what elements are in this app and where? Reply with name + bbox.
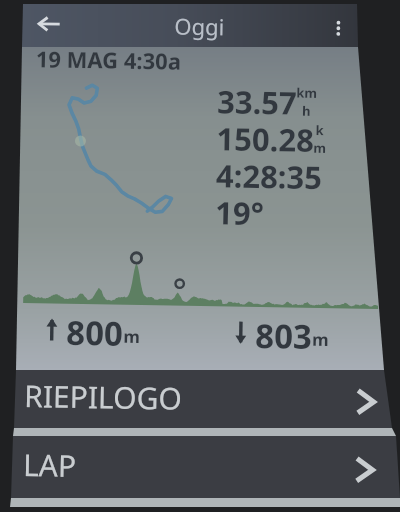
staticText: km bbox=[296, 84, 317, 102]
staticText: 19 MAG 4:30a bbox=[36, 43, 182, 76]
button[interactable]: RIEPILOGO bbox=[11, 366, 396, 431]
button[interactable]: More options bbox=[321, 11, 356, 46]
staticText: m bbox=[312, 328, 329, 351]
staticText: RIEPILOGO bbox=[24, 375, 183, 419]
staticText: m bbox=[313, 139, 326, 157]
staticText: 803 bbox=[255, 313, 313, 354]
staticText: 800 bbox=[66, 310, 124, 351]
staticText: 19° bbox=[215, 191, 265, 229]
staticText: 33.57 bbox=[217, 80, 297, 119]
staticText: m bbox=[123, 325, 140, 348]
staticText: 4:28:35 bbox=[216, 154, 323, 193]
button[interactable]: Back bbox=[31, 6, 66, 41]
staticText: 150.28 bbox=[216, 117, 315, 156]
staticText: Oggi bbox=[174, 10, 225, 41]
staticText: LAP bbox=[23, 444, 77, 486]
staticText: k bbox=[315, 121, 325, 139]
button[interactable]: LAP bbox=[10, 433, 395, 501]
staticText: h bbox=[302, 102, 311, 120]
